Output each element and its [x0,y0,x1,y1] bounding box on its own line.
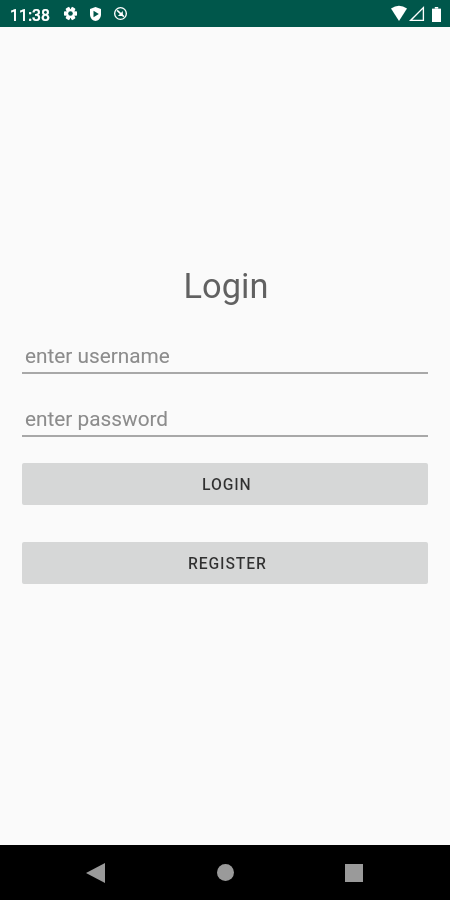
button[interactable]: Recent apps [329,857,379,888]
button[interactable]: Back [70,857,120,888]
button[interactable]: REGISTER [22,542,428,584]
button[interactable]: enter username [22,336,428,373]
staticText: LOGIN [202,475,252,493]
staticText: enter password [25,407,169,431]
button[interactable]: Home [200,857,250,888]
button[interactable]: LOGIN [22,463,428,505]
button[interactable]: enter password [22,399,428,436]
staticText: REGISTER [188,554,267,572]
staticText: 11:38 [10,6,50,24]
staticText: enter username [25,344,170,368]
staticText: Login [1,266,450,306]
